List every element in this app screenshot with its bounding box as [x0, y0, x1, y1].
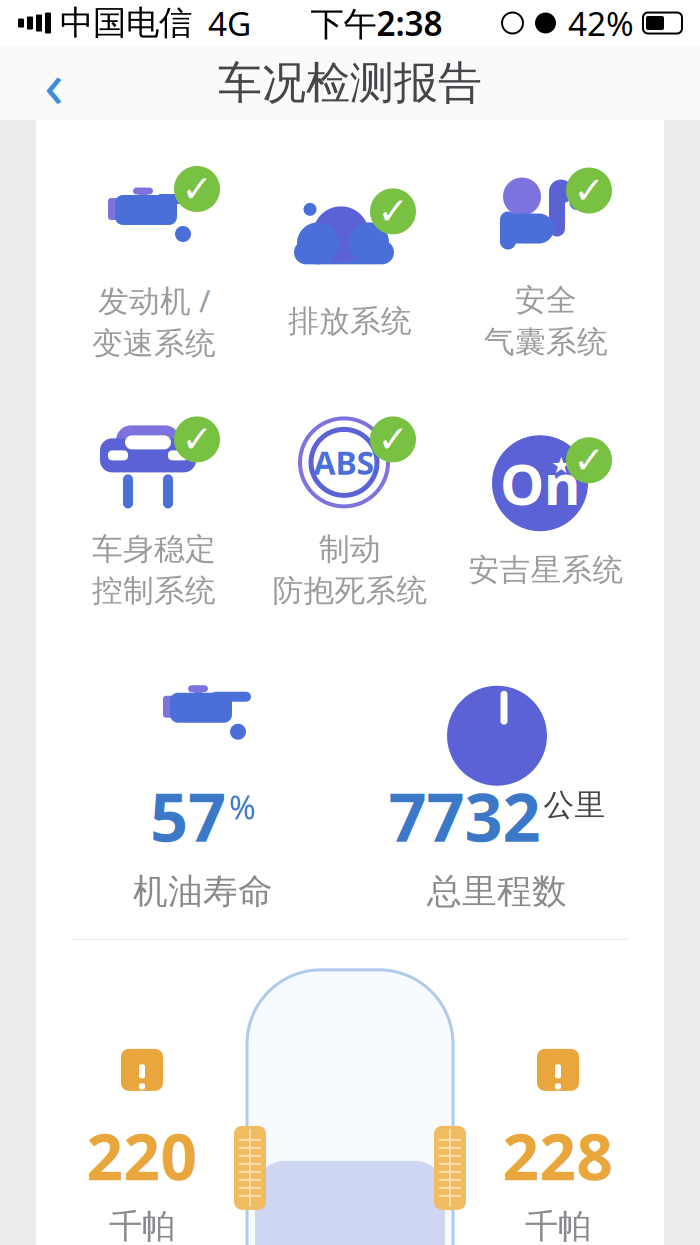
staticText: 228 — [502, 1113, 613, 1198]
staticText: 发动机 / — [98, 280, 210, 321]
staticText: ✓ — [181, 418, 212, 461]
staticText: 气囊系统 — [484, 323, 608, 361]
staticText: 安吉星系统 — [468, 551, 623, 589]
staticText: 220 — [86, 1113, 197, 1198]
button[interactable]: ✓ — [252, 182, 448, 340]
staticText: 42% — [568, 1, 634, 45]
staticText: 千帕 — [525, 1206, 591, 1245]
staticText: ✓ — [377, 418, 408, 461]
staticText: ✓ — [181, 168, 212, 210]
button[interactable]: ABS — [252, 410, 448, 610]
staticText: ABS — [313, 441, 374, 484]
staticText: ‹ — [44, 40, 64, 125]
button[interactable]: On — [448, 431, 644, 589]
button[interactable]: ✓ — [56, 410, 252, 610]
staticText: 防抱死系统 — [272, 572, 427, 610]
staticText: 车身稳定 — [92, 530, 216, 568]
staticText: On — [500, 446, 580, 520]
button[interactable]: ✓ — [56, 160, 252, 362]
staticText: 排放系统 — [288, 302, 412, 340]
staticText: 中国电信 — [60, 2, 192, 43]
staticText: 机油寿命 — [133, 870, 273, 913]
staticText: ★ — [551, 452, 571, 478]
staticText: 公里 — [543, 786, 605, 824]
staticText: 安全 — [515, 281, 577, 319]
button[interactable]: 返回 — [22, 51, 86, 115]
staticText: 下午2:38 — [310, 1, 442, 45]
staticText: 千帕 — [109, 1206, 175, 1245]
staticText: 总里程数 — [427, 870, 567, 913]
staticText: 4G — [208, 1, 251, 45]
button[interactable]: ✓ — [448, 161, 644, 361]
staticText: 变速系统 — [92, 325, 216, 362]
staticText: ✓ — [377, 190, 408, 233]
staticText: 车况检测报告 — [218, 56, 482, 110]
staticText: ✓ — [573, 169, 604, 212]
staticText: % — [229, 786, 256, 828]
staticText: 制动 — [319, 530, 381, 568]
staticText: 57 — [150, 772, 226, 860]
staticText: 7732 — [388, 772, 540, 860]
staticText: 控制系统 — [92, 572, 216, 610]
staticText: ✓ — [573, 439, 604, 481]
